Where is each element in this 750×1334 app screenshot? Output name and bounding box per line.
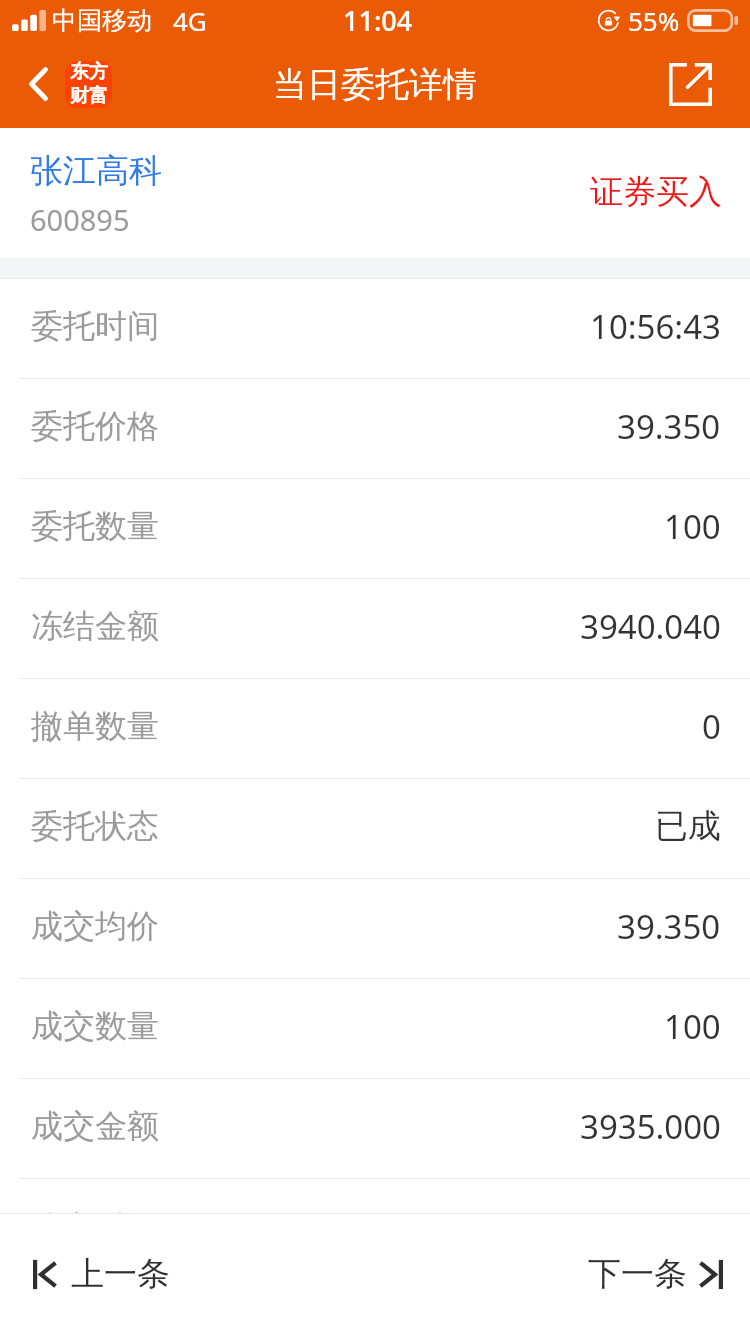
staticText: 11:04 (343, 2, 413, 39)
staticText: 10:56:43 (590, 304, 721, 349)
button[interactable]: 委托价格 (0, 379, 750, 479)
staticText: 证券买入 (590, 171, 722, 213)
staticText: 100 (664, 1004, 721, 1049)
button[interactable]: Back (0, 40, 124, 128)
staticText: 39.350 (617, 404, 721, 449)
staticText: 600895 (30, 200, 130, 239)
staticText: 委托数量 (31, 506, 159, 546)
button[interactable]: 委托数量 (0, 479, 750, 579)
staticText: 成交均价 (31, 906, 159, 946)
staticText: 委托价格 (31, 406, 159, 446)
button[interactable]: 成交金额 (0, 1079, 750, 1179)
button[interactable]: 上一条 (0, 1214, 200, 1334)
staticText: 成交数量 (31, 1006, 159, 1046)
button[interactable]: 成交数量 (0, 979, 750, 1079)
staticText: 3935.000 (580, 1104, 721, 1149)
staticText: 100 (664, 504, 721, 549)
staticText: 55% (628, 3, 680, 38)
button[interactable]: Share (639, 40, 750, 128)
button[interactable]: 委托状态 (0, 779, 750, 879)
staticText: 0 (702, 704, 721, 749)
staticText: 上一条 (71, 1253, 170, 1295)
button[interactable]: 成交均价 (0, 879, 750, 979)
button[interactable]: 撤单数量 (0, 679, 750, 779)
staticText: 中国移动 (52, 5, 152, 36)
staticText: 冻结金额 (31, 606, 159, 646)
button[interactable]: 冻结金额 (0, 579, 750, 679)
staticText: 成交金额 (31, 1106, 159, 1146)
staticText: 委托状态 (31, 806, 159, 846)
staticText: 撤单数量 (31, 706, 159, 746)
staticText: 委托时间 (31, 306, 159, 346)
staticText: 4G (173, 3, 207, 38)
button[interactable]: 下一条 (558, 1214, 750, 1334)
staticText: 当日委托详情 (273, 63, 477, 106)
staticText: 财富 (70, 84, 108, 107)
staticText: 张江高科 (30, 150, 162, 192)
staticText: 东方 (70, 61, 108, 84)
staticText: 3940.040 (580, 604, 721, 649)
staticText: 下一条 (588, 1253, 687, 1295)
button[interactable]: 委托时间 (0, 279, 750, 379)
staticText: 已成 (655, 805, 721, 847)
staticText: 39.350 (617, 904, 721, 949)
staticText: 成交时间 (31, 1208, 159, 1213)
